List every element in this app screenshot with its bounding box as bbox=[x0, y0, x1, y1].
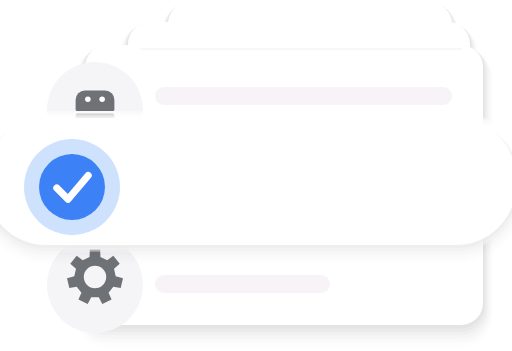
button[interactable]: Verified checklist illustration bbox=[0, 0, 512, 351]
